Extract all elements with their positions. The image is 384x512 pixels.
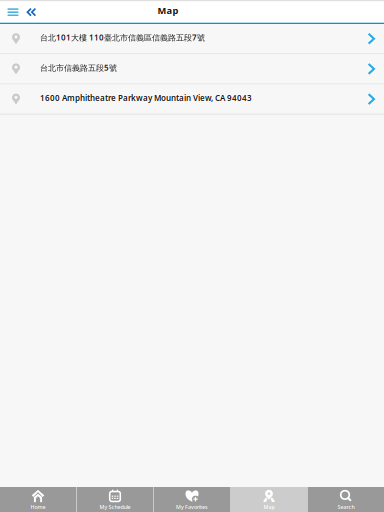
staticText: My Favorites bbox=[176, 503, 208, 510]
staticText: 1600 Amphitheatre Parkway Mountain View,… bbox=[40, 93, 252, 103]
staticText: Map bbox=[263, 503, 274, 510]
staticText: 台北市信義路五段5號 bbox=[40, 62, 117, 73]
staticText: Search bbox=[337, 503, 354, 510]
staticText: 台北101大樓 110臺北市信義區信義路五段7號 bbox=[40, 32, 205, 43]
button[interactable]: 台北101大樓 110臺北市信義區信義路五段7號 bbox=[0, 24, 384, 54]
button[interactable]: Map bbox=[231, 487, 307, 512]
staticText: My Schedule bbox=[99, 503, 130, 510]
button[interactable]: Home bbox=[0, 487, 76, 512]
button[interactable]: 1600 Amphitheatre Parkway Mountain View,… bbox=[0, 84, 384, 115]
button[interactable]: My Schedule bbox=[77, 487, 153, 512]
staticText: Map bbox=[157, 4, 178, 17]
button[interactable]: Menu bbox=[4, 2, 22, 23]
button[interactable]: Back bbox=[22, 2, 40, 23]
button[interactable]: Search bbox=[308, 487, 384, 512]
staticText: Home bbox=[30, 503, 45, 510]
button[interactable]: My Favorites bbox=[154, 487, 230, 512]
button[interactable]: 台北市信義路五段5號 bbox=[0, 54, 384, 84]
